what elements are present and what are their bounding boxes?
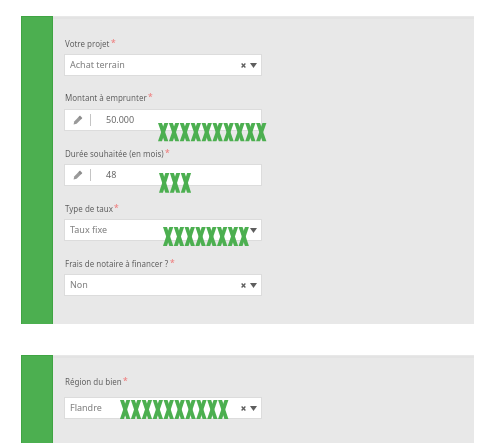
staticText: Région du bien: [65, 376, 122, 387]
staticText: *: [165, 147, 170, 159]
button[interactable]: Modifier la valeur: [69, 167, 85, 183]
button[interactable]: Modifier la valeur: [69, 112, 85, 128]
button[interactable]: Achat terrain: [64, 54, 262, 76]
staticText: Votre projet: [65, 38, 110, 49]
staticText: Non: [70, 278, 88, 290]
button[interactable]: Taux fixe: [64, 219, 262, 241]
button[interactable]: Effacer la sélection: [236, 57, 250, 73]
staticText: *: [148, 91, 153, 103]
staticText: *: [170, 257, 175, 269]
staticText: 48: [106, 168, 117, 180]
staticText: 50.000: [106, 113, 135, 125]
staticText: Flandre: [70, 401, 102, 413]
button[interactable]: Non: [64, 274, 262, 296]
button[interactable]: Effacer la sélection: [236, 277, 250, 293]
button[interactable]: Modifier la valeur: [64, 109, 262, 131]
staticText: Type de taux: [65, 203, 113, 214]
staticText: Montant à emprunter: [65, 92, 147, 103]
button[interactable]: Ouvrir la liste: [247, 222, 260, 238]
button[interactable]: Ouvrir la liste: [247, 400, 260, 416]
staticText: Frais de notaire à financer ?: [65, 258, 169, 269]
staticText: *: [111, 37, 116, 49]
button[interactable]: Ouvrir la liste: [247, 277, 260, 293]
staticText: *: [123, 375, 128, 387]
button[interactable]: Flandre: [64, 397, 262, 419]
staticText: Achat terrain: [70, 58, 125, 70]
button[interactable]: Ouvrir la liste: [247, 57, 260, 73]
button[interactable]: Effacer la sélection: [236, 400, 250, 416]
staticText: Durée souhaitée (en mois): [65, 148, 164, 159]
staticText: Taux fixe: [70, 223, 108, 235]
staticText: *: [114, 202, 119, 214]
button[interactable]: Modifier la valeur: [64, 164, 262, 186]
